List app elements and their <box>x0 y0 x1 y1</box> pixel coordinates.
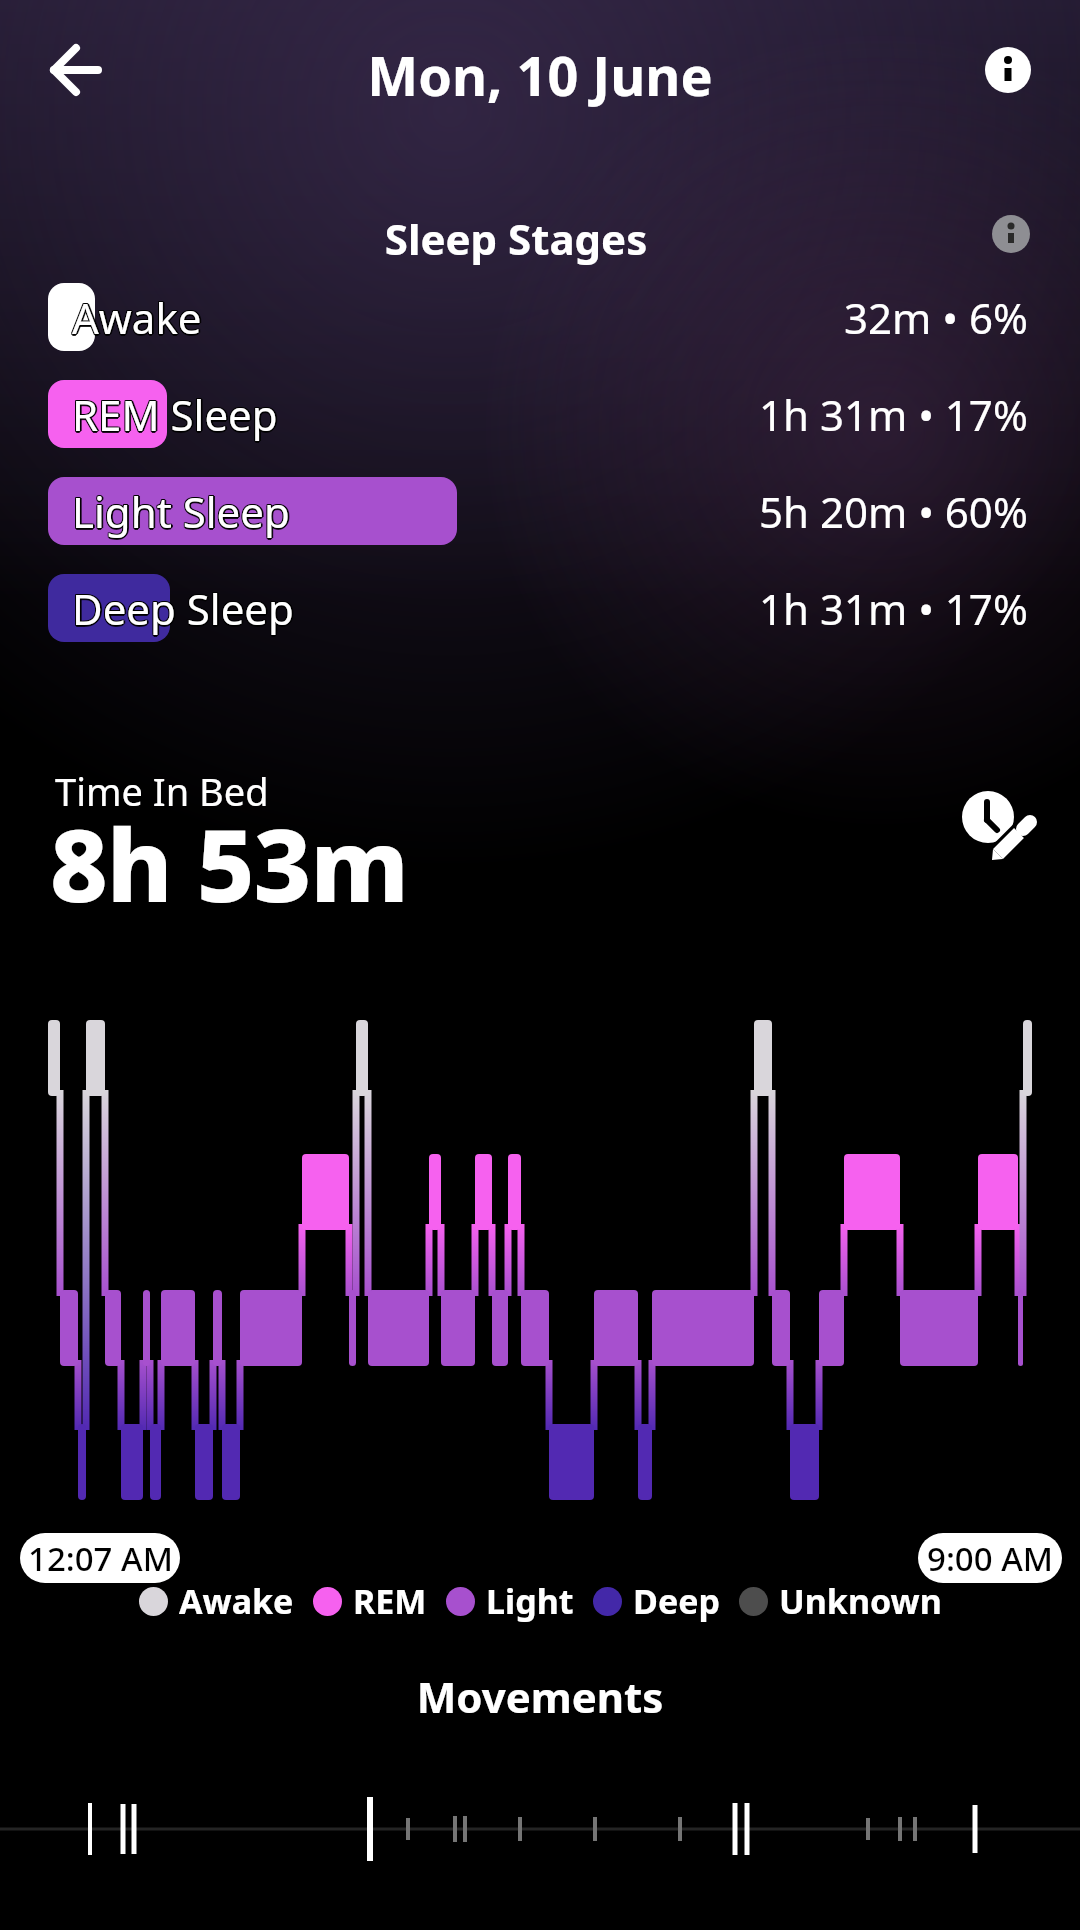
staticText: REM Sleep <box>71 385 277 442</box>
staticText: Deep Sleep <box>74 580 296 637</box>
staticText: Sleep Stages <box>0 210 1056 267</box>
staticText: Awake <box>73 288 203 345</box>
staticText: Deep Sleep <box>72 582 294 639</box>
staticText: Time In Bed <box>55 765 269 817</box>
staticText: Awake <box>71 289 201 346</box>
button[interactable] <box>48 380 167 448</box>
staticText: Unknown <box>779 1578 942 1624</box>
staticText: Light Sleep <box>73 484 291 541</box>
button[interactable] <box>48 283 95 351</box>
button[interactable] <box>950 780 1040 870</box>
staticText: Light Sleep <box>71 484 289 541</box>
staticText: Light Sleep <box>71 483 289 540</box>
staticText: Light Sleep <box>72 482 290 539</box>
staticText: Deep Sleep <box>73 581 295 638</box>
staticText: 1h 31m • 17% <box>759 386 1028 443</box>
staticText: 5h 20m • 60% <box>759 483 1028 540</box>
staticText: Deep Sleep <box>72 580 294 637</box>
staticText: Awake <box>71 290 201 347</box>
staticText: Light <box>486 1578 574 1624</box>
staticText: REM Sleep <box>74 386 280 443</box>
button[interactable] <box>48 574 170 642</box>
staticText: Awake <box>179 1578 294 1624</box>
staticText: Deep Sleep <box>71 581 293 638</box>
staticText: REM Sleep <box>71 386 277 443</box>
staticText: Deep Sleep <box>71 579 293 636</box>
staticText: Light Sleep <box>74 483 292 540</box>
staticText: Light Sleep <box>73 482 291 539</box>
staticText: 1h 31m • 17% <box>759 580 1028 637</box>
staticText: Awake <box>72 288 202 345</box>
staticText: Mon, 10 June <box>0 38 1080 112</box>
staticText: Awake <box>72 289 202 346</box>
staticText: Movements <box>0 1668 1080 1725</box>
staticText: Deep Sleep <box>73 579 295 636</box>
staticText: Awake <box>72 291 202 348</box>
staticText: 8h 53m <box>50 795 408 931</box>
staticText: REM <box>353 1578 427 1624</box>
button[interactable] <box>50 44 102 96</box>
staticText: REM Sleep <box>73 387 279 444</box>
staticText: Light Sleep <box>71 482 289 539</box>
staticText: Awake <box>73 290 203 347</box>
staticText: REM Sleep <box>72 385 278 442</box>
button[interactable] <box>48 477 457 545</box>
staticText: REM Sleep <box>72 386 278 443</box>
button[interactable] <box>984 46 1032 94</box>
staticText: REM Sleep <box>71 387 277 444</box>
staticText: 32m • 6% <box>844 289 1028 346</box>
staticText: Deep Sleep <box>71 580 293 637</box>
staticText: Deep Sleep <box>72 579 294 636</box>
button[interactable] <box>991 214 1031 254</box>
staticText: REM Sleep <box>73 385 279 442</box>
staticText: Awake <box>71 288 201 345</box>
staticText: Light Sleep <box>72 485 290 542</box>
button[interactable]: 9:00 AM <box>918 1533 1062 1583</box>
staticText: REM Sleep <box>72 388 278 445</box>
staticText: Awake <box>74 289 204 346</box>
button[interactable]: 12:07 AM <box>20 1533 180 1583</box>
staticText: 9:00 AM <box>927 1536 1054 1581</box>
staticText: Deep <box>633 1578 720 1624</box>
staticText: Light Sleep <box>72 483 290 540</box>
staticText: 12:07 AM <box>28 1536 173 1581</box>
